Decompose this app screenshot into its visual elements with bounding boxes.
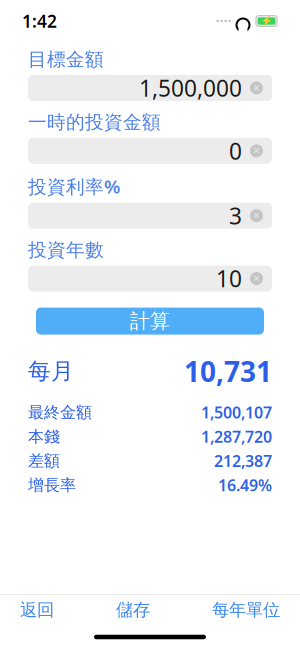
staticText: ✕ <box>252 210 260 221</box>
staticText: 每月 <box>28 357 74 385</box>
staticText: 儲存 <box>116 599 150 621</box>
staticText: 1,500,000 <box>139 73 242 103</box>
staticText: 10 <box>216 263 242 294</box>
staticText: 1:42 <box>22 9 57 32</box>
button[interactable]: 儲存 <box>110 591 156 629</box>
staticText: 計算 <box>130 309 170 333</box>
staticText: 投資利率% <box>28 174 120 199</box>
staticText: 3 <box>229 201 242 231</box>
staticText: ✕ <box>252 146 260 156</box>
staticText: 16.49% <box>218 474 272 496</box>
button[interactable]: 每年單位 <box>206 591 286 629</box>
button[interactable]: 返回 <box>14 591 60 629</box>
staticText: 一時的投資金額 <box>28 111 161 134</box>
staticText: 增長率 <box>28 475 76 495</box>
staticText: 本錢 <box>28 427 60 446</box>
staticText: ⚡ <box>260 16 272 26</box>
button[interactable]: 0 <box>28 138 272 164</box>
staticText: 0 <box>229 136 242 166</box>
staticText: ✕ <box>252 83 260 93</box>
staticText: 10,731 <box>184 353 272 390</box>
button[interactable]: 計算 <box>36 308 264 335</box>
staticText: 差額 <box>28 451 60 471</box>
button[interactable]: 3 <box>28 203 272 229</box>
button[interactable]: 1,500,000 <box>28 75 272 101</box>
staticText: 返回 <box>20 599 54 621</box>
staticText: 目標金額 <box>28 48 104 71</box>
staticText: 1,287,720 <box>201 426 272 447</box>
staticText: 最終金額 <box>28 403 92 422</box>
button[interactable]: 10 <box>28 266 272 292</box>
staticText: ✕ <box>252 273 260 284</box>
staticText: 212,387 <box>214 450 272 471</box>
staticText: 投資年數 <box>28 239 104 261</box>
staticText: 1,500,107 <box>201 402 272 423</box>
staticText: 每年單位 <box>212 599 280 621</box>
